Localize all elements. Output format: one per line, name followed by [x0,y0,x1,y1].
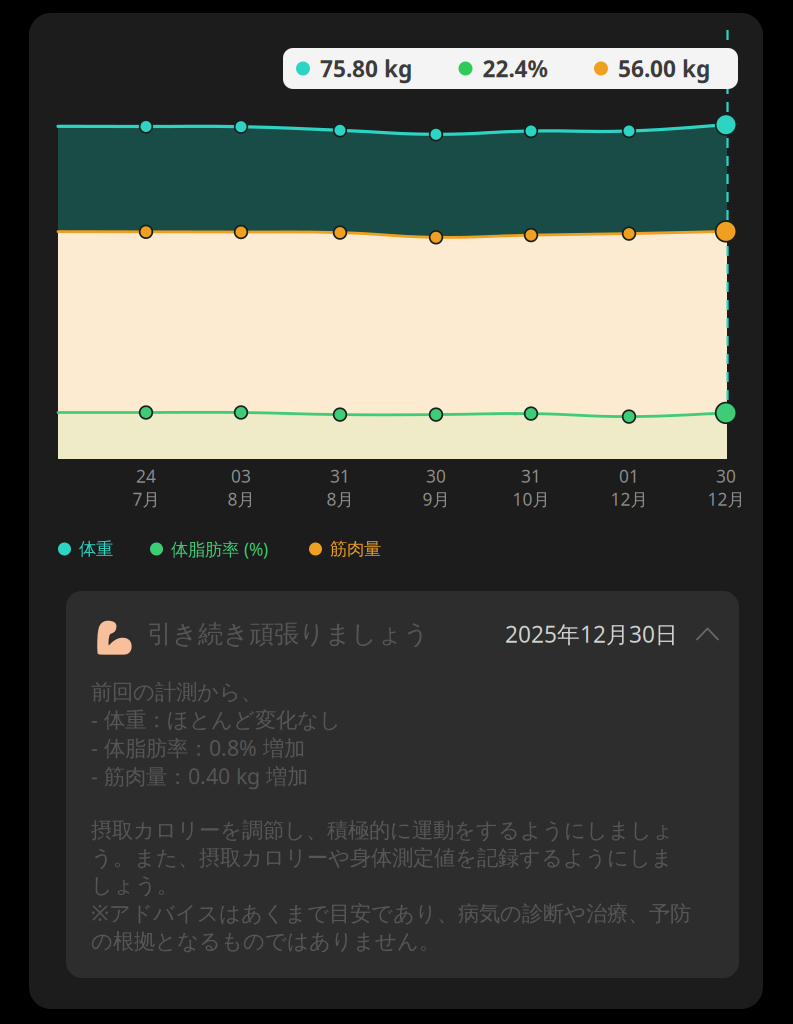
staticText: 31 [521,464,541,487]
staticText: 前回の計測から、 [91,679,262,705]
staticText: 12月 [707,487,744,510]
staticText: 01 [619,464,639,487]
button[interactable]: 体脂肪率 (%) [150,537,268,560]
staticText: 体脂肪率 (%) [171,537,268,560]
staticText: ※アドバイスはあくまで目安であり、病気の診断や治療、予防の根拠となるものではあり… [91,899,691,954]
staticText: - 体脂肪率：0.8% 増加 [91,733,305,762]
staticText: 7月 [132,487,159,510]
staticText: 9月 [422,487,449,510]
staticText: 24 [136,464,156,487]
button[interactable]: 体重 [58,538,113,560]
staticText: 56.00 kg [618,53,710,83]
button[interactable]: 75.80 kg [283,48,738,89]
staticText: 75.80 kg [320,53,412,83]
staticText: 03 [231,464,251,487]
staticText: 筋肉量 [330,538,381,560]
staticText: - 筋肉量：0.40 kg 増加 [91,762,308,790]
staticText: 12月 [610,487,647,510]
staticText: 2025年12月30日 [505,619,678,649]
staticText: 30 [426,464,446,487]
staticText: 22.4% [482,53,547,83]
staticText: 31 [330,464,350,487]
button[interactable]: 引き続き頑張りましょう [66,591,739,978]
staticText: 8月 [227,487,254,510]
button[interactable]: 筋肉量 [309,538,381,560]
staticText: 体重 [79,538,113,560]
staticText: - 体重：ほとんど変化なし [91,705,341,733]
staticText: 8月 [326,487,353,510]
staticText: 30 [716,464,736,487]
staticText: 引き続き頑張りましょう [147,618,429,649]
staticText: 摂取カロリーを調節し、積極的に運動をするようにしましょう。また、摂取カロリーや身… [91,817,674,899]
staticText: 10月 [512,487,549,510]
